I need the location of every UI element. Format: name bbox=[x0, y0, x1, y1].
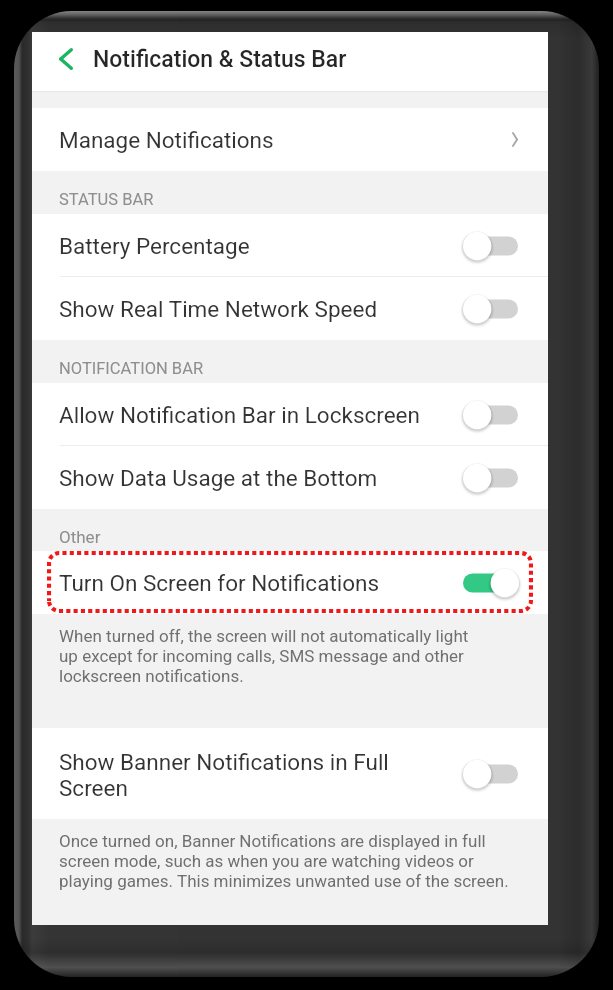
staticText: screen mode, such as when you are watchi… bbox=[59, 851, 474, 871]
button[interactable]: Allow Notification Bar in Lockscreen bbox=[32, 383, 548, 446]
button[interactable]: Battery Percentage bbox=[32, 214, 548, 277]
button[interactable]: Show Banner Notifications in Full Screen bbox=[32, 728, 548, 819]
button[interactable]: Turn On Screen for Notifications, on bbox=[463, 565, 519, 601]
button[interactable]: Manage Notifications bbox=[32, 108, 548, 171]
button[interactable]: Show Real Time Network Speed, off bbox=[463, 291, 519, 327]
staticText: Other bbox=[59, 527, 101, 547]
staticText: Manage Notifications bbox=[59, 127, 274, 153]
staticText: STATUS BAR bbox=[59, 190, 154, 209]
staticText: Notification & Status Bar bbox=[93, 46, 347, 73]
button[interactable]: Show Real Time Network Speed bbox=[32, 277, 548, 340]
button[interactable]: Back bbox=[40, 32, 92, 91]
staticText: Turn On Screen for Notifications bbox=[59, 570, 380, 596]
button[interactable]: Allow Notification Bar in Lockscreen, of… bbox=[463, 397, 519, 433]
staticText: NOTIFICATION BAR bbox=[59, 359, 204, 378]
staticText: Allow Notification Bar in Lockscreen bbox=[59, 402, 420, 428]
button[interactable]: Show Banner Notifications in Full Screen… bbox=[463, 756, 519, 792]
staticText: playing games. This minimizes unwanted u… bbox=[59, 871, 509, 891]
button[interactable]: Show Data Usage at the Bottom bbox=[32, 446, 548, 509]
staticText: Once turned on, Banner Notifications are… bbox=[59, 831, 486, 851]
staticText: When turned off, the screen will not aut… bbox=[59, 626, 469, 646]
button[interactable]: Battery Percentage, off bbox=[463, 228, 519, 264]
button[interactable]: Show Data Usage at the Bottom, off bbox=[463, 460, 519, 496]
button[interactable]: Turn On Screen for Notifications bbox=[32, 551, 548, 614]
staticText: Show Real Time Network Speed bbox=[59, 296, 378, 322]
staticText: Show Data Usage at the Bottom bbox=[59, 465, 378, 491]
staticText: up except for incoming calls, SMS messag… bbox=[59, 646, 464, 666]
staticText: Show Banner Notifications in Full Screen bbox=[59, 749, 447, 802]
staticText: Battery Percentage bbox=[59, 233, 250, 259]
staticText: lockscreen notifications. bbox=[59, 666, 244, 686]
